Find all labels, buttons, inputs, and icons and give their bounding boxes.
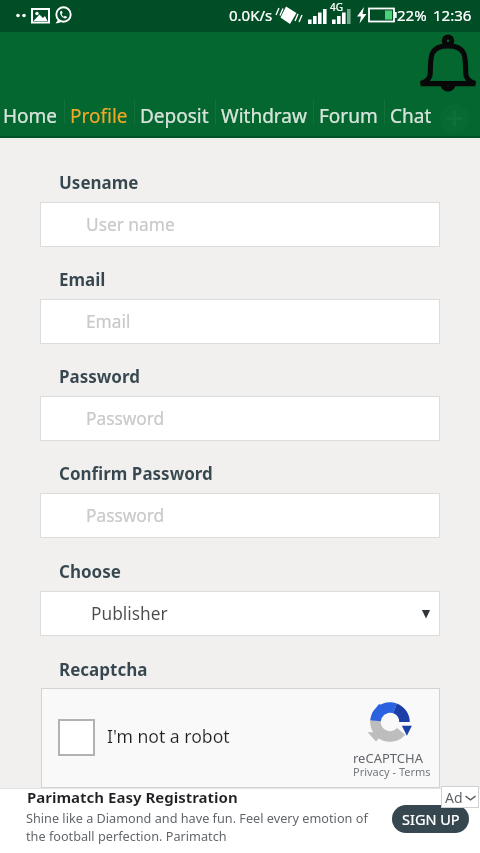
button[interactable]: Home — [0, 96, 64, 136]
staticText: the football perfection. Parimatch — [26, 827, 227, 844]
staticText: Email — [59, 268, 106, 291]
staticText: Forum — [319, 103, 378, 129]
staticText: User name — [86, 213, 175, 237]
staticText: Shine like a Diamond and have fun. Feel … — [26, 809, 368, 826]
staticText: Publisher — [91, 602, 168, 626]
staticText: Password — [86, 504, 165, 528]
button[interactable]: Publisher — [40, 591, 440, 636]
button[interactable]: SIGN UP — [392, 805, 469, 833]
button[interactable]: Chat — [384, 96, 438, 136]
button[interactable]: Password — [40, 396, 440, 441]
staticText: Profile — [70, 103, 128, 129]
staticText: Ad — [445, 788, 463, 807]
staticText: 4G — [330, 0, 343, 14]
button[interactable]: User name — [40, 202, 440, 247]
button[interactable]: Notifications — [418, 34, 478, 98]
staticText: Password — [59, 365, 140, 388]
staticText: reCAPTCHA — [353, 749, 423, 767]
staticText: SIGN UP — [402, 809, 460, 829]
button[interactable]: Forum — [313, 96, 384, 136]
staticText: Recaptcha — [59, 658, 148, 681]
staticText: 0.0K/s — [229, 5, 273, 25]
button[interactable]: Profile — [64, 96, 134, 136]
button[interactable]: Password — [40, 493, 440, 538]
staticText: Parimatch Easy Registration — [27, 787, 238, 807]
staticText: 22% — [397, 5, 427, 25]
staticText: Chat — [390, 103, 432, 129]
staticText: Email — [86, 310, 131, 334]
button[interactable]: Withdraw — [215, 96, 313, 136]
staticText: Withdraw — [221, 103, 307, 129]
staticText: 12:36 — [433, 5, 472, 25]
button[interactable]: I'm not a robot checkbox — [58, 719, 95, 756]
staticText: Home — [3, 103, 58, 129]
staticText: I'm not a robot — [107, 724, 230, 748]
button[interactable]: Ad — [441, 786, 479, 808]
button[interactable]: Email — [40, 299, 440, 344]
staticText: Confirm Password — [59, 462, 213, 485]
button[interactable]: Deposit — [134, 96, 215, 136]
staticText: Privacy - Terms — [353, 764, 431, 779]
staticText: Deposit — [140, 103, 209, 129]
staticText: Password — [86, 407, 165, 431]
staticText: Usename — [59, 171, 139, 194]
staticText: Choose — [59, 560, 121, 583]
